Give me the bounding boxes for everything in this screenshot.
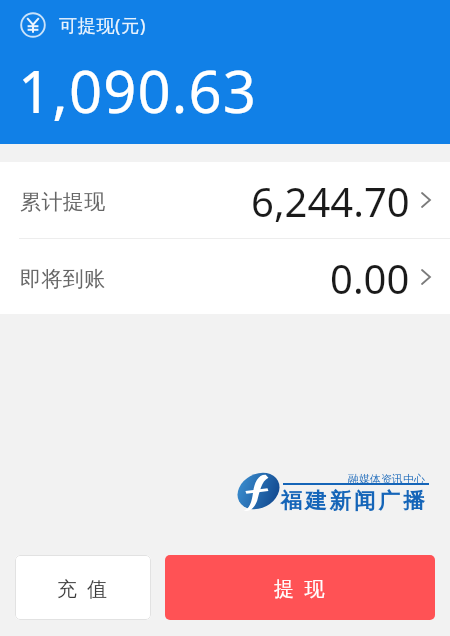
staticText: 累计提现 bbox=[20, 189, 106, 215]
staticText: 可提现(元) bbox=[59, 13, 146, 38]
other: Open details bbox=[421, 192, 431, 208]
staticText: 6,244.70 bbox=[251, 174, 410, 228]
staticText: 福建新闻广播 bbox=[279, 487, 426, 514]
button[interactable]: 充 值 bbox=[15, 555, 151, 620]
button[interactable]: 提 现 bbox=[165, 555, 435, 620]
staticText: 融媒体资讯中心 bbox=[348, 472, 425, 486]
staticText: 提 现 bbox=[274, 575, 327, 602]
button[interactable]: 累计提现 bbox=[0, 162, 450, 238]
button[interactable]: 即将到账 bbox=[0, 239, 450, 314]
staticText: 即将到账 bbox=[20, 266, 106, 292]
staticText: 0.00 bbox=[330, 251, 410, 305]
staticText: 充 值 bbox=[57, 575, 110, 602]
other: Open details bbox=[421, 269, 431, 285]
staticText: 1,090.63 bbox=[18, 51, 257, 130]
